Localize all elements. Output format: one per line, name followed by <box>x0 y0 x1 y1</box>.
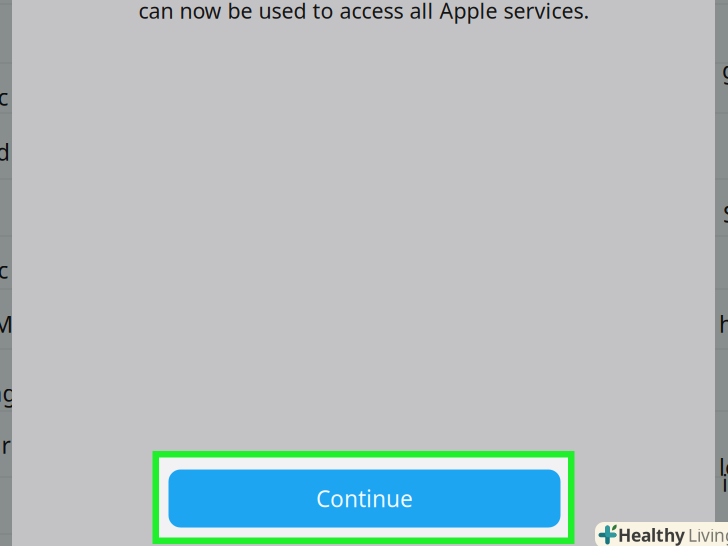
staticText: Continue <box>316 483 413 513</box>
staticText: Healthy <box>618 523 685 546</box>
staticText: d <box>0 137 10 167</box>
staticText: ag <box>0 378 16 408</box>
staticText: M <box>0 309 13 339</box>
button[interactable]: Continue <box>152 451 574 544</box>
staticText: c <box>0 82 8 112</box>
staticText: S <box>723 199 728 229</box>
staticText: Living <box>688 523 728 546</box>
staticText: lo <box>719 452 728 482</box>
staticText: can now be used to access all Apple serv… <box>138 0 589 25</box>
staticText: g <box>722 55 728 85</box>
staticText: hi <box>719 309 728 339</box>
staticText: ir <box>0 430 10 460</box>
staticText: c <box>0 255 8 285</box>
staticText: if <box>722 468 728 498</box>
